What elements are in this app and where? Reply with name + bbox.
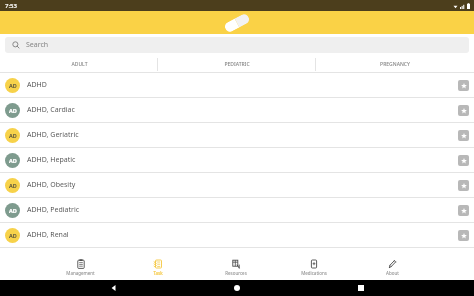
staticText: AD <box>9 207 17 214</box>
staticText: ADHD, Renal <box>27 230 458 240</box>
button[interactable]: Favorite <box>458 180 469 191</box>
button[interactable]: Favorite <box>458 130 469 141</box>
button[interactable]: Recents <box>351 280 371 296</box>
staticText: ADHD, Geriatric <box>27 130 458 140</box>
button[interactable]: Resources <box>197 254 275 280</box>
button[interactable]: AD <box>0 73 474 97</box>
staticText: AD <box>9 157 17 164</box>
staticText: PEDIATRIC <box>224 61 250 68</box>
button[interactable]: Home <box>227 280 247 296</box>
staticText: AD <box>9 232 17 239</box>
staticText: ADHD, Pediatric <box>27 205 458 215</box>
button[interactable]: AD <box>0 173 474 197</box>
staticText: Search <box>26 40 49 50</box>
staticText: Resources <box>225 270 247 276</box>
staticText: Medications <box>301 270 327 276</box>
button[interactable]: Favorite <box>458 205 469 216</box>
button[interactable]: AD <box>0 223 474 247</box>
staticText: Task <box>153 270 163 276</box>
button[interactable]: PREGNANCY <box>316 56 474 72</box>
staticText: ADHD, Cardiac <box>27 105 458 115</box>
button[interactable]: Favorite <box>458 230 469 241</box>
button[interactable]: AD <box>0 98 474 122</box>
button[interactable]: Task <box>119 254 197 280</box>
button[interactable]: Medications <box>275 254 353 280</box>
button[interactable]: AD <box>0 148 474 172</box>
button[interactable]: AD <box>0 198 474 222</box>
staticText: PREGNANCY <box>380 61 410 68</box>
staticText: ADHD, Obesity <box>27 180 458 190</box>
staticText: AD <box>9 107 17 114</box>
button[interactable]: ADULT <box>0 56 158 72</box>
button[interactable]: Back <box>104 280 124 296</box>
button[interactable]: Favorite <box>458 155 469 166</box>
staticText: Management <box>66 270 95 276</box>
staticText: AD <box>9 132 17 139</box>
button[interactable]: About <box>353 254 431 280</box>
button[interactable]: PEDIATRIC <box>158 56 316 72</box>
staticText: ADULT <box>71 61 88 68</box>
button[interactable]: Management <box>42 254 119 280</box>
button[interactable]: Search <box>5 37 469 53</box>
staticText: ADHD <box>27 80 458 90</box>
staticText: ADHD, Hepatic <box>27 155 458 165</box>
staticText: 7:53 <box>5 2 17 10</box>
staticText: AD <box>9 182 17 189</box>
button[interactable]: Favorite <box>458 80 469 91</box>
button[interactable]: AD <box>0 123 474 147</box>
staticText: AD <box>9 82 17 89</box>
button[interactable]: Favorite <box>458 105 469 116</box>
staticText: About <box>386 270 399 276</box>
